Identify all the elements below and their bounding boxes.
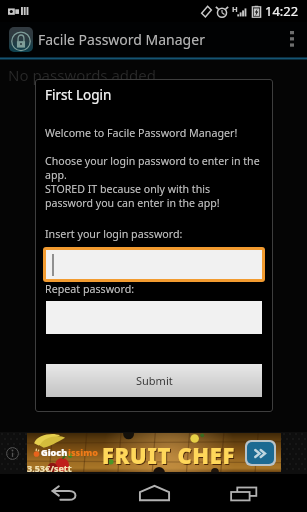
staticText: 14:22 (265, 2, 299, 20)
button[interactable] (46, 250, 262, 279)
button[interactable]: Recent apps (216, 474, 272, 512)
button[interactable]: Open ad (247, 442, 274, 464)
staticText: FRUIT CHEF (103, 441, 236, 471)
button[interactable]: Back (36, 474, 92, 512)
staticText: Repeat password: (45, 282, 135, 297)
button[interactable]: More options (280, 22, 304, 57)
staticText: First Login (45, 86, 112, 104)
staticText: 3,53€/sett (27, 462, 72, 472)
staticText: issimo (68, 446, 98, 458)
staticText: H (232, 4, 238, 14)
staticText: Facile Password Manager (38, 30, 205, 49)
staticText: No passwords added (8, 65, 157, 85)
staticText: Gioch (41, 446, 68, 458)
button[interactable]: Advertisement Fruit Chef (27, 433, 281, 472)
staticText: Choose your login password to enter in t… (45, 154, 260, 210)
staticText: Submit (136, 373, 173, 388)
button[interactable]: Ad information (5, 446, 19, 460)
button[interactable]: Submit (46, 364, 262, 397)
staticText: Welcome to Facile Password Manager! (45, 126, 238, 141)
button[interactable]: Home (126, 474, 182, 512)
staticText: FRUIT CHEF (102, 440, 235, 470)
staticText: Insert your login password: (45, 227, 183, 242)
